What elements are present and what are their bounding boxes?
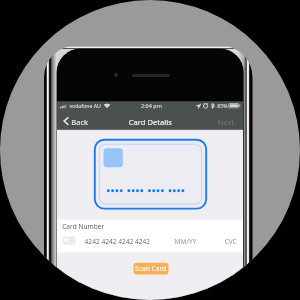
button[interactable] [0,0,300,300]
